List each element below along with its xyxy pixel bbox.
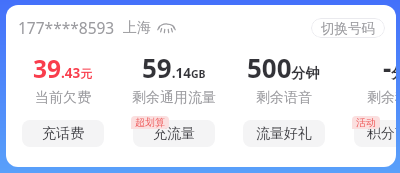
staticText: 超划算 bbox=[135, 116, 165, 129]
staticText: 积分商城 bbox=[367, 125, 396, 143]
staticText: 当前欠费 bbox=[35, 89, 91, 107]
staticText: 活动 bbox=[356, 116, 376, 129]
staticText: 上海 bbox=[123, 19, 151, 37]
staticText: 59.14GB bbox=[142, 50, 206, 85]
staticText: 39.43元 bbox=[33, 52, 92, 85]
staticText: 充话费 bbox=[42, 125, 84, 143]
staticText: -分 bbox=[383, 50, 396, 85]
staticText: 177****8593 bbox=[18, 17, 115, 38]
button[interactable]: 充流量 bbox=[133, 120, 215, 147]
button[interactable]: 积分商城 bbox=[354, 120, 396, 147]
staticText: 切换号码 bbox=[321, 20, 375, 37]
staticText: 剩余语音 bbox=[256, 89, 312, 107]
staticText: 剩余积分 bbox=[367, 89, 396, 107]
button[interactable]: 流量好礼 bbox=[243, 120, 325, 147]
button[interactable]: Hide amounts bbox=[158, 20, 174, 36]
staticText: 流量好礼 bbox=[256, 125, 312, 143]
staticText: 剩余通用流量 bbox=[132, 89, 216, 107]
button[interactable]: 切换号码 bbox=[311, 18, 385, 38]
staticText: 充流量 bbox=[153, 125, 195, 143]
staticText: 500分钟 bbox=[247, 50, 320, 85]
button[interactable]: 充话费 bbox=[22, 120, 104, 147]
